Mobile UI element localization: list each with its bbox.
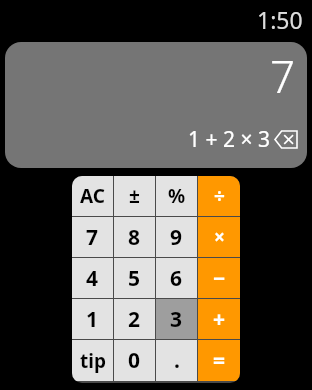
- staticText: 9: [170, 223, 183, 252]
- staticText: 5: [128, 264, 141, 293]
- staticText: −: [213, 264, 226, 293]
- button[interactable]: tip: [72, 340, 113, 381]
- staticText: 1:50: [257, 4, 303, 35]
- staticText: AC: [80, 183, 105, 209]
- staticText: %: [168, 183, 186, 209]
- button[interactable]: 7: [72, 217, 113, 257]
- staticText: =: [213, 346, 226, 375]
- button[interactable]: +: [198, 299, 240, 339]
- staticText: tip: [80, 348, 106, 374]
- staticText: ×: [214, 224, 225, 250]
- button[interactable]: ±: [114, 176, 155, 216]
- button[interactable]: Backspace: [275, 131, 297, 148]
- button[interactable]: =: [198, 340, 240, 381]
- button[interactable]: −: [198, 258, 240, 298]
- staticText: 1: [86, 305, 99, 334]
- button[interactable]: 8: [114, 217, 155, 257]
- staticText: 8: [128, 223, 141, 252]
- staticText: 1 + 2 × 3: [188, 125, 270, 154]
- button[interactable]: 2: [114, 299, 155, 339]
- staticText: 2: [128, 305, 141, 334]
- staticText: 0: [128, 346, 141, 375]
- button[interactable]: .: [156, 340, 197, 381]
- staticText: 3: [170, 305, 183, 334]
- staticText: .: [174, 346, 180, 375]
- button[interactable]: ÷: [198, 176, 240, 216]
- staticText: 6: [170, 264, 183, 293]
- button[interactable]: 6: [156, 258, 197, 298]
- staticText: +: [213, 305, 226, 334]
- staticText: ±: [129, 183, 140, 209]
- button[interactable]: AC: [72, 176, 113, 216]
- button[interactable]: 0: [114, 340, 155, 381]
- button[interactable]: 4: [72, 258, 113, 298]
- staticText: 4: [86, 264, 99, 293]
- staticText: 7: [86, 223, 99, 252]
- button[interactable]: 3: [156, 299, 197, 339]
- staticText: 7: [269, 46, 295, 106]
- button[interactable]: %: [156, 176, 197, 216]
- staticText: ÷: [214, 183, 225, 209]
- button[interactable]: 5: [114, 258, 155, 298]
- button[interactable]: 1: [72, 299, 113, 339]
- button[interactable]: 7: [5, 42, 307, 168]
- button[interactable]: ×: [198, 217, 240, 257]
- button[interactable]: 9: [156, 217, 197, 257]
